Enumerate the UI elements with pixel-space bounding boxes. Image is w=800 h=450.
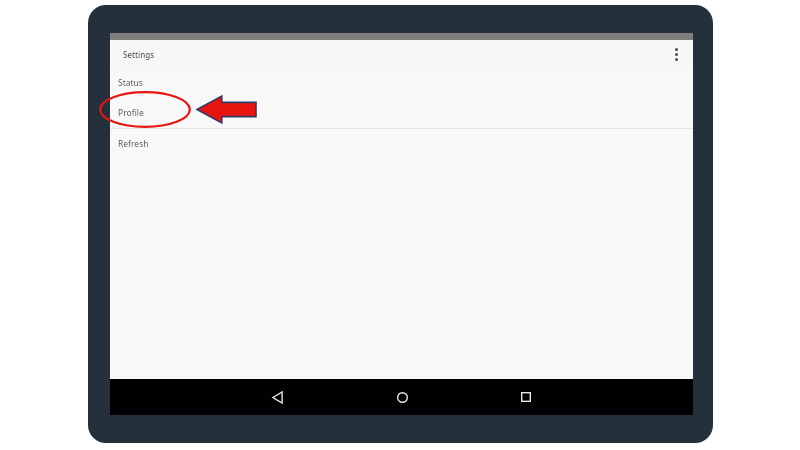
button[interactable]: Profile [110, 98, 693, 128]
button[interactable]: Back [260, 380, 294, 414]
staticText: Status [118, 77, 143, 89]
button[interactable]: More options [667, 45, 685, 63]
button[interactable]: Home [385, 380, 419, 414]
staticText: Profile [118, 107, 144, 119]
button[interactable]: Status [110, 68, 693, 98]
staticText: Settings [123, 49, 155, 60]
staticText: Refresh [118, 138, 149, 150]
button[interactable]: Recent apps [509, 380, 543, 414]
button[interactable]: Refresh [110, 129, 693, 159]
